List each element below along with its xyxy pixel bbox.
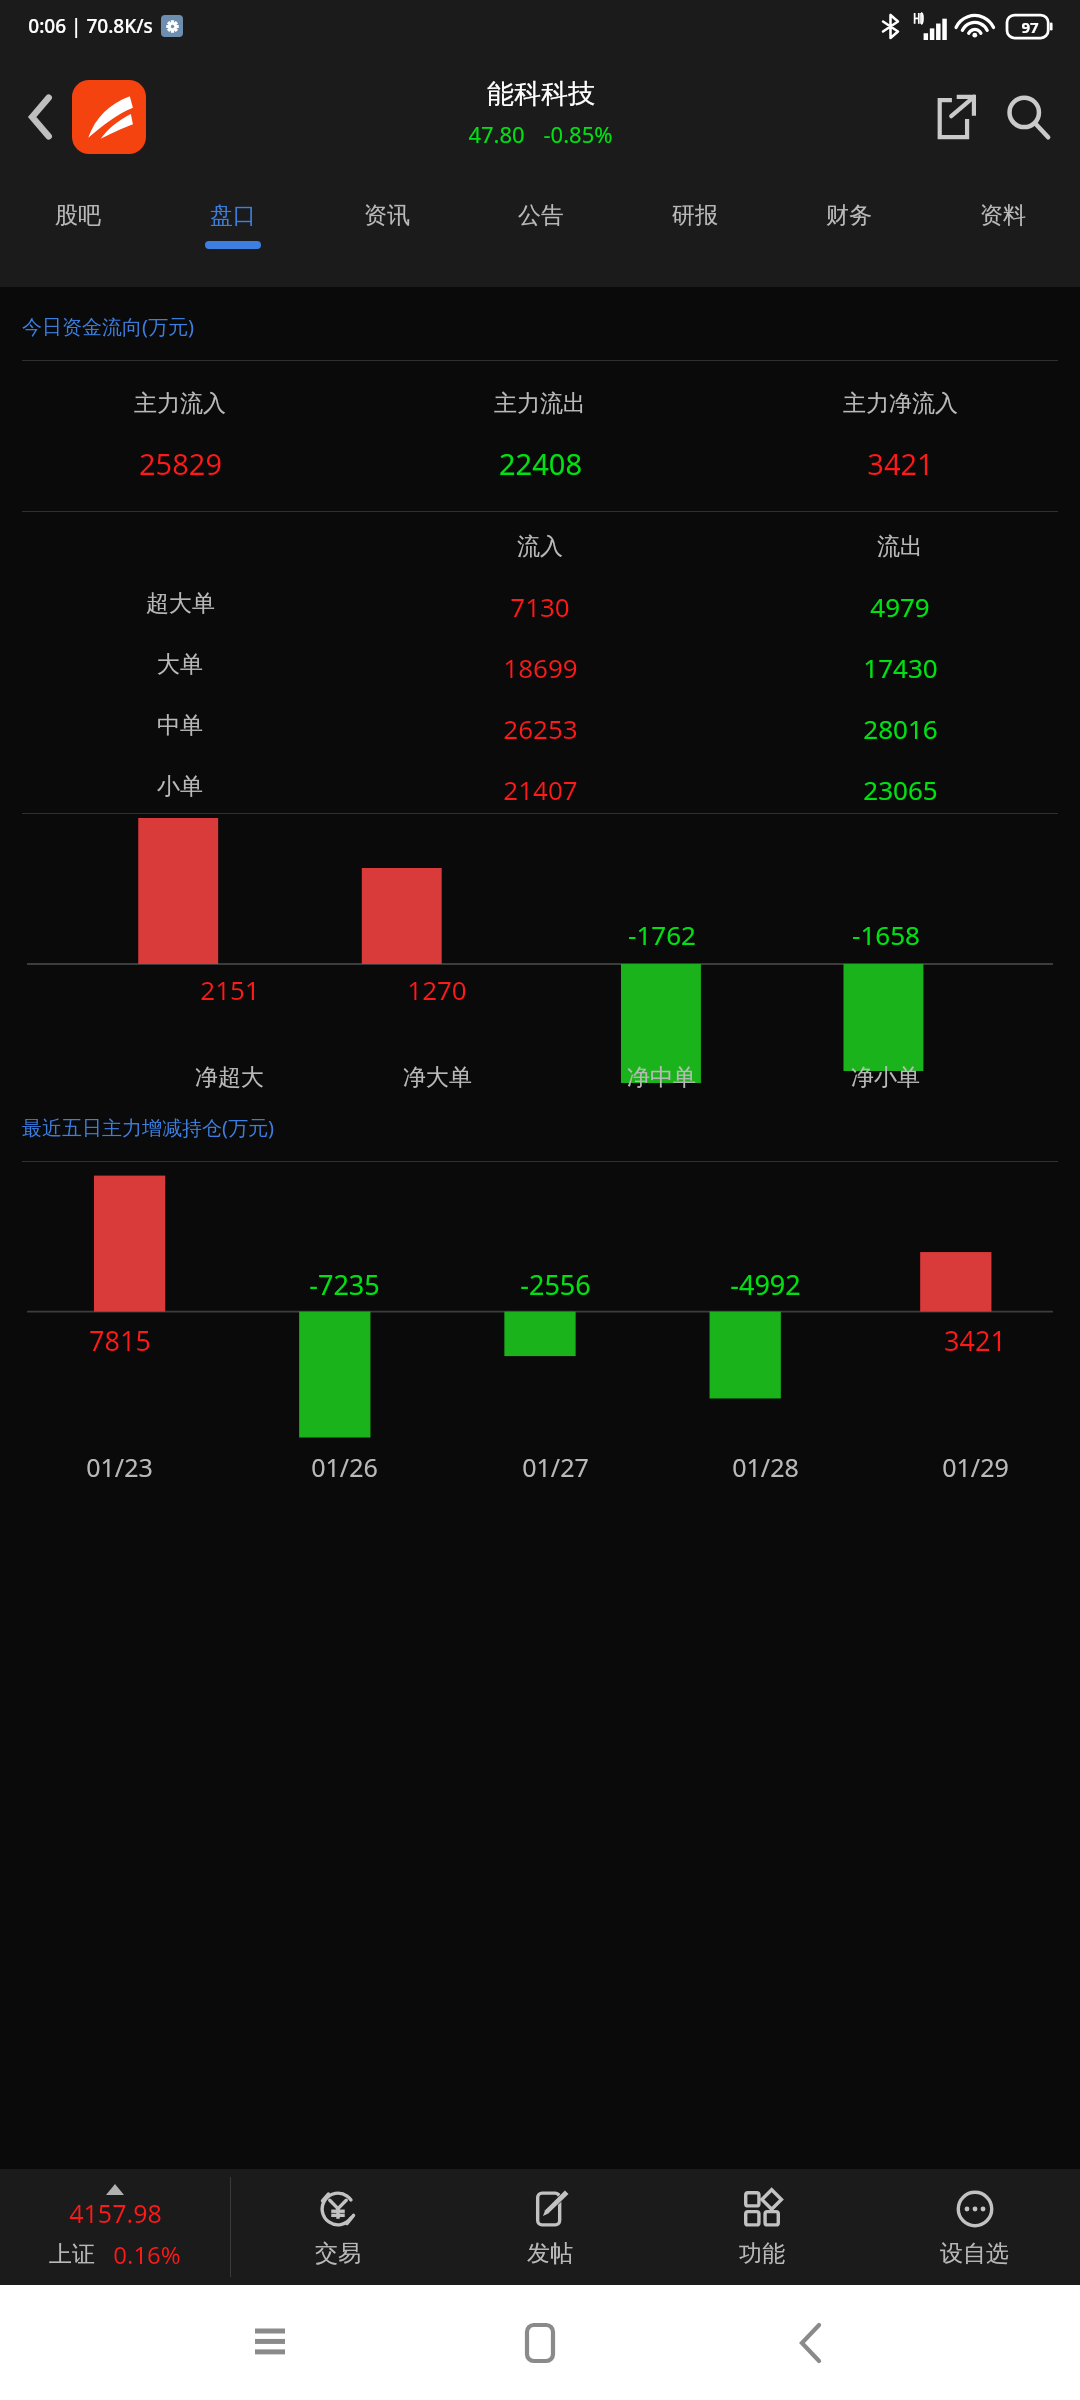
staticText: 大单 xyxy=(157,650,203,679)
staticText: 1270 xyxy=(407,972,467,1007)
staticText: 25829 xyxy=(139,444,222,483)
staticText: 主力流入 xyxy=(134,389,226,418)
staticText: -2556 xyxy=(520,1266,591,1303)
staticText: 主力流出 xyxy=(494,389,586,418)
staticText: 财务 xyxy=(826,201,872,230)
staticText: 公告 xyxy=(518,201,564,230)
button[interactable]: Back xyxy=(675,2285,945,2400)
staticText: 26253 xyxy=(503,711,578,746)
staticText: 中单 xyxy=(157,711,203,740)
staticText: 研报 xyxy=(672,201,718,230)
button[interactable]: App home xyxy=(72,80,146,154)
staticText: 资料 xyxy=(980,201,1026,230)
button[interactable]: 资讯 xyxy=(310,182,464,287)
button[interactable]: Back xyxy=(10,86,72,148)
staticText: -1658 xyxy=(852,917,920,952)
button[interactable]: 公告 xyxy=(464,182,618,287)
staticText: 上证 xyxy=(49,2240,95,2269)
button[interactable]: 研报 xyxy=(618,182,772,287)
button[interactable]: 发帖 xyxy=(444,2169,656,2285)
staticText: 3421 xyxy=(867,444,934,483)
staticText: 小单 xyxy=(157,772,203,801)
staticText: -4992 xyxy=(730,1266,801,1303)
staticText: 17430 xyxy=(863,650,938,685)
staticText: 18699 xyxy=(503,650,578,685)
staticText: 28016 xyxy=(863,711,938,746)
staticText: -1762 xyxy=(628,917,696,952)
staticText: 4979 xyxy=(870,589,930,624)
button[interactable]: 盘口 xyxy=(155,182,310,287)
staticText: 7130 xyxy=(510,589,570,624)
button[interactable]: 功能 xyxy=(656,2169,868,2285)
staticText: 能科科技 xyxy=(487,77,595,111)
button[interactable]: Shanghai index xyxy=(0,2169,230,2285)
staticText: 净中单 xyxy=(627,1063,696,1092)
staticText: -0.85% xyxy=(543,119,613,149)
staticText: 交易 xyxy=(315,2239,361,2268)
button[interactable]: 财务 xyxy=(772,182,926,287)
staticText: 7815 xyxy=(89,1322,151,1359)
staticText: 01/23 xyxy=(86,1450,153,1484)
button[interactable]: Search xyxy=(992,82,1062,152)
staticText: 设自选 xyxy=(940,2239,1009,2268)
button[interactable]: 设自选 xyxy=(868,2169,1080,2285)
button[interactable]: Recents xyxy=(135,2285,405,2400)
button[interactable]: 资料 xyxy=(926,182,1080,287)
staticText: 01/29 xyxy=(942,1450,1009,1484)
staticText: 47.80 xyxy=(468,119,525,149)
staticText: 流入 xyxy=(517,532,563,561)
staticText: 资讯 xyxy=(364,201,410,230)
button[interactable]: 交易 xyxy=(231,2169,444,2285)
staticText: 3421 xyxy=(944,1322,1006,1359)
button[interactable]: 股吧 xyxy=(0,182,155,287)
button[interactable]: Home xyxy=(405,2285,675,2400)
staticText: 净大单 xyxy=(403,1063,472,1092)
staticText: 0:06 | 70.8K/s xyxy=(28,13,153,39)
staticText: 0.16% xyxy=(113,2238,181,2271)
staticText: 盘口 xyxy=(210,201,256,230)
staticText: 发帖 xyxy=(527,2239,573,2268)
staticText: 净小单 xyxy=(851,1063,920,1092)
staticText: 流出 xyxy=(877,532,923,561)
staticText: 23065 xyxy=(863,772,938,807)
staticText: -7235 xyxy=(309,1266,380,1303)
staticText: 01/27 xyxy=(522,1450,589,1484)
staticText: 22408 xyxy=(499,444,582,483)
staticText: 股吧 xyxy=(55,201,101,230)
staticText: 最近五日主力增减持仓(万元) xyxy=(22,1114,274,1141)
staticText: 01/26 xyxy=(311,1450,378,1484)
staticText: 今日资金流向(万元) xyxy=(22,313,194,340)
staticText: 21407 xyxy=(503,772,578,807)
staticText: 主力净流入 xyxy=(843,389,958,418)
staticText: 净超大 xyxy=(195,1063,264,1092)
button[interactable]: Share xyxy=(922,82,992,152)
staticText: 97 xyxy=(1021,17,1039,37)
staticText: 超大单 xyxy=(146,589,215,618)
staticText: 功能 xyxy=(739,2239,785,2268)
staticText: 2151 xyxy=(200,972,260,1007)
staticText: 4157.98 xyxy=(69,2196,162,2230)
staticText: 01/28 xyxy=(732,1450,799,1484)
